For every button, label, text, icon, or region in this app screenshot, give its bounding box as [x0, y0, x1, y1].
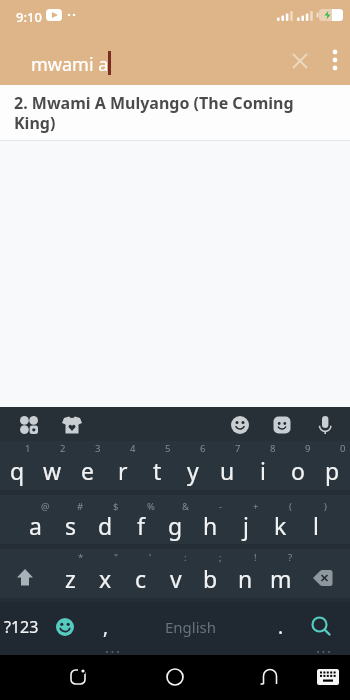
button[interactable]: ?123 [0, 602, 42, 652]
button[interactable]: x [88, 561, 123, 595]
button[interactable]: , [88, 602, 124, 652]
staticText: o [291, 455, 305, 486]
staticText: $ [113, 500, 119, 512]
button[interactable]: d [88, 508, 123, 542]
staticText: b [203, 563, 218, 594]
staticText: @ [41, 500, 50, 512]
button[interactable]: . [258, 602, 304, 652]
staticText: 6 [200, 442, 206, 454]
staticText: & [182, 500, 189, 512]
button[interactable]: t [140, 453, 175, 487]
staticText: f [137, 510, 145, 541]
staticText: - [219, 500, 223, 512]
staticText: ' [149, 551, 152, 563]
button[interactable]: v [158, 561, 193, 595]
staticText: , [103, 614, 109, 640]
staticText: i [260, 455, 266, 486]
staticText: p [325, 455, 340, 486]
staticText: # [77, 500, 84, 512]
staticText: 8 [270, 442, 276, 454]
staticText: s [65, 510, 77, 541]
staticText: q [10, 455, 25, 486]
staticText: g [168, 510, 183, 541]
staticText: d [98, 510, 113, 541]
button[interactable]: h [193, 508, 228, 542]
staticText: ( [289, 500, 292, 512]
staticText: 7 [235, 442, 241, 454]
staticText: h [203, 510, 218, 541]
staticText: 0 [340, 442, 346, 454]
staticText: ?123 [4, 616, 39, 638]
button[interactable] [151, 655, 199, 700]
button[interactable]: English [124, 602, 258, 652]
staticText: 5 [165, 442, 171, 454]
staticText: " [114, 551, 118, 563]
button[interactable]: l [298, 508, 333, 542]
button[interactable]: i [245, 453, 280, 487]
staticText: u [220, 455, 235, 486]
staticText: z [65, 563, 76, 594]
staticText: 4 [130, 442, 136, 454]
staticText: k [274, 510, 287, 541]
button[interactable]: 2. Mwami A Mulyango (The Coming King) [0, 85, 350, 140]
staticText: . [278, 614, 284, 640]
staticText: 2. Mwami A Mulyango (The Coming King) [14, 92, 294, 133]
staticText: n [238, 563, 253, 594]
staticText: ! [254, 551, 257, 563]
staticText: + [253, 500, 259, 512]
button[interactable]: w [35, 453, 70, 487]
button[interactable]: c [123, 561, 158, 595]
staticText: 9:10 [16, 8, 42, 26]
staticText: mwami a [31, 52, 109, 77]
button[interactable]: f [123, 508, 158, 542]
staticText: 2 [60, 442, 66, 454]
button[interactable]: b [193, 561, 228, 595]
button[interactable]: u [210, 453, 245, 487]
staticText: * [78, 551, 84, 563]
button[interactable]: a [18, 508, 53, 542]
button[interactable] [42, 602, 88, 652]
button[interactable]: r [105, 453, 140, 487]
button[interactable]: k [263, 508, 298, 542]
staticText: l [313, 510, 319, 541]
staticText: ? [288, 551, 293, 563]
staticText: English [165, 617, 217, 637]
staticText: a [29, 510, 42, 541]
button[interactable] [286, 47, 314, 75]
button[interactable]: y [175, 453, 210, 487]
staticText: c [135, 563, 147, 594]
button[interactable] [322, 47, 348, 73]
staticText: ; [219, 551, 222, 563]
button[interactable]: z [53, 561, 88, 595]
staticText: y [187, 455, 199, 486]
staticText: 9 [305, 442, 311, 454]
button[interactable]: g [158, 508, 193, 542]
button[interactable]: e [70, 453, 105, 487]
staticText: x [99, 563, 112, 594]
button[interactable]: q [0, 453, 35, 487]
staticText: e [81, 455, 94, 486]
button[interactable] [304, 602, 350, 652]
button[interactable]: p [315, 453, 350, 487]
staticText: ) [324, 500, 327, 512]
button[interactable]: m [263, 561, 298, 595]
staticText: : [184, 551, 187, 563]
button[interactable]: o [280, 453, 315, 487]
button[interactable]: n [228, 561, 263, 595]
staticText: 3 [95, 442, 101, 454]
button[interactable]: s [53, 508, 88, 542]
button[interactable]: j [228, 508, 263, 542]
staticText: m [270, 563, 292, 594]
staticText: w [43, 455, 62, 486]
staticText: % [147, 500, 155, 512]
staticText: r [118, 455, 128, 486]
staticText: v [170, 563, 182, 594]
staticText: t [153, 455, 162, 486]
staticText: j [243, 510, 249, 541]
button[interactable] [306, 655, 350, 700]
staticText: 1 [25, 442, 31, 454]
button[interactable] [54, 655, 102, 700]
button[interactable] [246, 655, 294, 700]
